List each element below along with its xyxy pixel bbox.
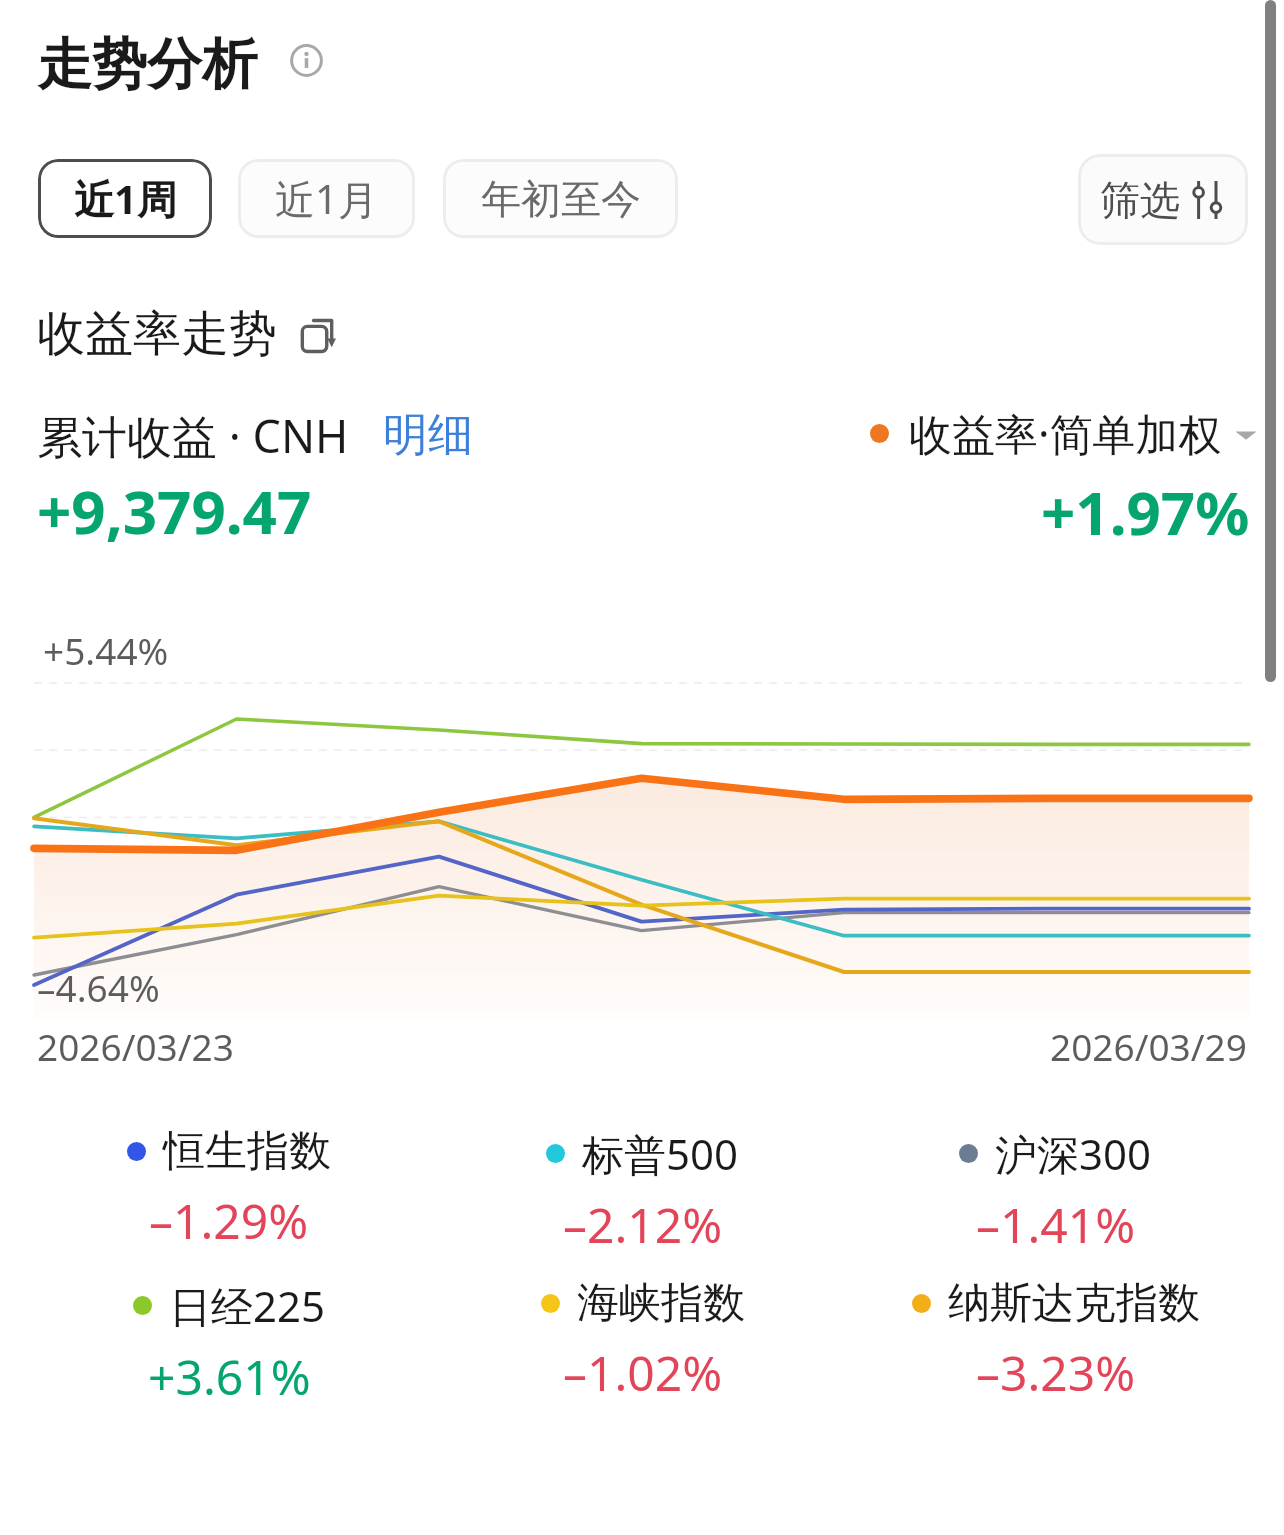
staticText: –1.02%: [563, 1340, 723, 1405]
button[interactable]: 近1周: [38, 159, 212, 238]
staticText: 近1周: [74, 171, 177, 226]
button[interactable]: 收益率·简单加权: [870, 404, 1258, 463]
button[interactable]: 日经225: [22, 1277, 436, 1409]
button[interactable]: 海峡指数: [436, 1277, 849, 1405]
button[interactable]: Info: [286, 40, 326, 80]
staticText: 年初至今: [481, 174, 641, 224]
staticText: 日经225: [169, 1277, 326, 1334]
staticText: 筛选: [1100, 175, 1180, 225]
button[interactable]: Expand chart: [301, 315, 334, 353]
staticText: –4.64%: [37, 962, 160, 1012]
button[interactable]: 近1月: [238, 159, 415, 238]
staticText: 沪深300: [995, 1125, 1152, 1182]
staticText: 恒生指数: [163, 1125, 331, 1178]
staticText: –2.12%: [563, 1192, 723, 1257]
button[interactable]: 沪深300: [849, 1125, 1262, 1257]
staticText: +9,379.47: [37, 470, 312, 552]
button[interactable]: 标普500: [436, 1125, 849, 1257]
staticText: +3.61%: [148, 1344, 311, 1409]
staticText: 2026/03/29: [1050, 1021, 1247, 1071]
button[interactable]: 筛选: [1078, 154, 1248, 245]
staticText: –3.23%: [976, 1340, 1136, 1405]
staticText: 纳斯达克指数: [948, 1277, 1200, 1330]
staticText: 收益率·简单加权: [909, 404, 1222, 463]
staticText: 2026/03/23: [37, 1021, 234, 1071]
staticText: 近1月: [275, 171, 378, 226]
staticText: –1.41%: [976, 1192, 1136, 1257]
button[interactable]: 年初至今: [443, 159, 678, 238]
staticText: 海峡指数: [577, 1277, 745, 1330]
staticText: 标普500: [582, 1125, 739, 1182]
staticText: 走势分析: [37, 30, 257, 99]
button[interactable]: 纳斯达克指数: [849, 1277, 1262, 1405]
staticText: +5.44%: [43, 625, 169, 675]
staticText: 累计收益 · CNH: [37, 405, 349, 466]
button[interactable]: 明细: [383, 407, 473, 464]
staticText: +1.97%: [1041, 471, 1250, 553]
button[interactable]: 恒生指数: [22, 1125, 436, 1253]
staticText: 收益率走势: [37, 304, 277, 364]
staticText: –1.29%: [149, 1188, 309, 1253]
